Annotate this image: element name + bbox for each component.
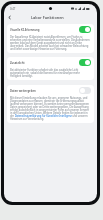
button[interactable]: Toggle	[79, 59, 91, 66]
button[interactable]: Daten weitergeben	[7, 85, 94, 123]
button[interactable]: Visuelle KI-Erkennung	[7, 24, 94, 53]
staticText: Daten weitergeben	[10, 89, 79, 93]
staticText: Der AquaSense KI-Assistent nutzt Algorit…	[10, 35, 91, 50]
staticText: Bei aktivierter Funktion schaltet sich d…	[10, 68, 91, 77]
button[interactable]: Zusatzlicht	[7, 57, 94, 80]
staticText: Labor Funktionen	[31, 15, 64, 20]
staticText: Visuelle KI-Erkennung	[10, 28, 79, 32]
button[interactable]: Toggle	[79, 26, 91, 33]
button[interactable]: Toggle	[79, 87, 91, 94]
staticText: 0:47	[10, 7, 16, 11]
button[interactable]: Back	[6, 14, 13, 21]
staticText: Zusatzlicht	[10, 61, 79, 65]
staticText: Mit dieser Einstellung erlauben Sie uns,…	[10, 96, 91, 120]
